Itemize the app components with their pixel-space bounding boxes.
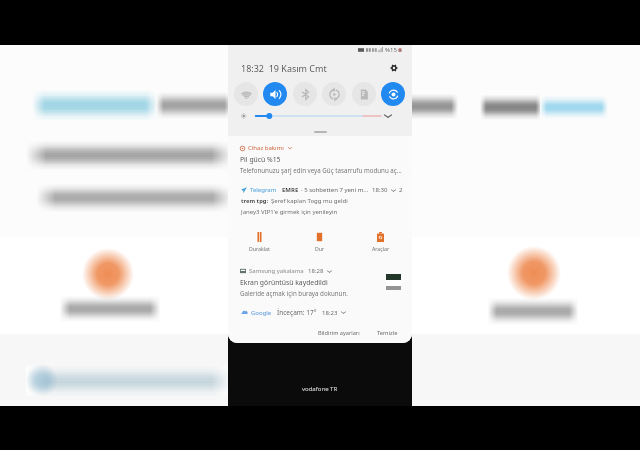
staticText: Galeride açmak için buraya dokunun. [240,289,348,297]
staticText: 2 [399,186,403,194]
staticText: 18:23 [322,309,338,317]
staticText: vodafone TR [302,385,338,393]
button[interactable]: Temizle [373,325,402,341]
staticText: · 5 sohbetten 7 yeni m... [301,186,369,194]
staticText: %15 [385,46,397,54]
staticText: Temizle [377,329,398,337]
button[interactable]: Sync [381,82,405,106]
staticText: EMRE [282,186,299,194]
staticText: Bildirim ayarları [318,329,360,337]
button[interactable]: Settings [387,61,401,75]
staticText: Telefonunuzu şarj edin veya Güç tasarruf… [240,166,402,174]
button[interactable]: Sound [263,82,287,106]
button[interactable]: Telegram [229,181,411,223]
staticText: 18:30 [372,186,388,194]
staticText: Google [251,309,272,317]
staticText: 18:32 19 Kasım Cmt [241,62,327,74]
staticText: İnceçam: 17° [277,308,317,317]
button[interactable]: Bluetooth [293,82,317,106]
staticText: Şeref kaplan Togg mu geldi [271,197,348,205]
staticText: Araçlar [372,245,390,252]
button[interactable]: Bildirim ayarları [314,325,364,341]
staticText: Ekran görüntüsü kaydedildi [240,278,328,287]
button[interactable]: Wi-Fi [234,82,258,106]
staticText: Dur [315,245,325,252]
staticText: Cihaz bakımı [248,144,284,152]
staticText: Telegram [250,186,277,194]
button[interactable]: Dur [289,225,350,258]
button[interactable]: Samsung yakalama [229,259,411,304]
staticText: Pil gücü %15 [240,155,281,164]
staticText: Samsung yakalama [249,267,304,275]
button[interactable]: Expand quick settings [380,108,396,124]
button[interactable]: Cihaz bakımı [229,137,411,180]
button[interactable]: Araçlar [350,225,411,258]
button[interactable]: Power saving [352,82,376,106]
button[interactable]: Duraklat [229,225,289,258]
staticText: 18:28 [308,267,324,275]
staticText: Duraklat [249,245,270,252]
button[interactable]: Google [229,304,411,321]
staticText: trem tpg: [241,197,269,205]
button[interactable]: Auto rotate [322,82,346,106]
staticText: Janey3 VIP1'e girmek için yenileyin [241,208,338,216]
